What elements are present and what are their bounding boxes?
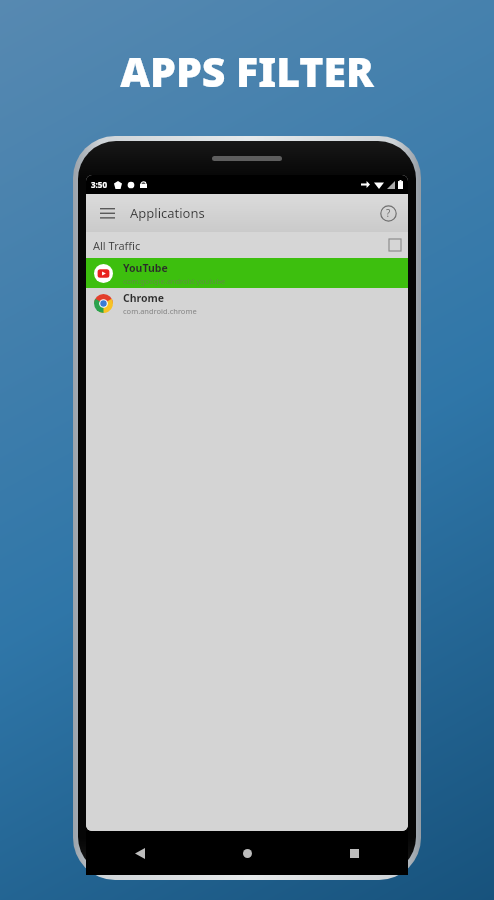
button[interactable]: Recent apps [301,831,408,875]
staticText: All Traffic [93,238,141,253]
button[interactable]: Home [194,831,301,875]
staticText: YouTube [123,261,168,275]
staticText: Applications [130,204,205,222]
button[interactable]: Back [86,831,194,875]
staticText: APPS FILTER [0,43,494,99]
staticText: com.google.android.youtube [123,276,226,286]
button[interactable]: YouTube [86,258,408,288]
button[interactable]: All Traffic [86,232,408,258]
staticText: ? [386,206,391,220]
button[interactable]: Help [374,199,402,227]
staticText: com.android.chrome [123,306,197,316]
button[interactable]: Chrome [86,288,408,318]
staticText: Chrome [123,291,165,305]
button[interactable]: Open navigation menu [92,198,122,228]
staticText: 3:50 [91,179,107,190]
